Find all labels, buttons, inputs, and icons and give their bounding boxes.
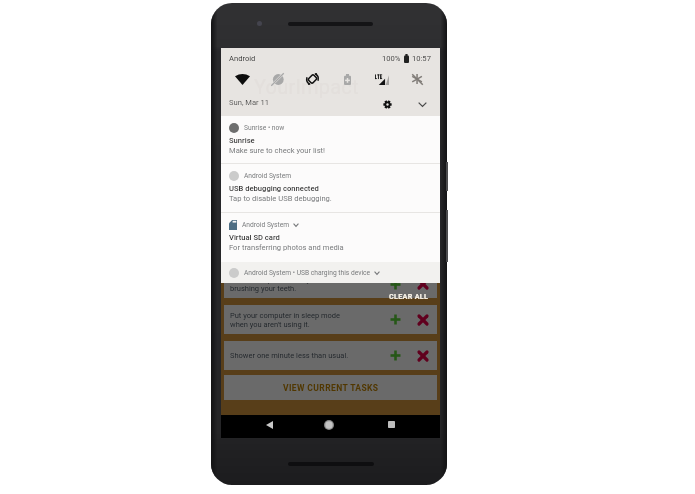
- staticText: 100%: [382, 54, 401, 63]
- staticText: Sun, Mar 11: [229, 98, 270, 107]
- staticText: Virtual SD card: [229, 233, 280, 242]
- button[interactable]: Android System: [221, 213, 440, 262]
- button[interactable]: Add: [382, 270, 408, 298]
- staticText: Android System • USB charging this devic…: [244, 269, 371, 277]
- staticText: Shower one minute less than usual.: [230, 351, 390, 360]
- staticText: Sunrise • now: [244, 124, 285, 132]
- button[interactable]: Flashlight: [404, 66, 430, 92]
- button[interactable]: Expand: [412, 94, 432, 114]
- staticText: 10:57: [412, 54, 431, 63]
- button[interactable]: Put your computer in sleep mode when you…: [224, 305, 437, 334]
- staticText: Make toothpaste last by brushing your te…: [230, 275, 390, 293]
- staticText: Android System: [244, 172, 292, 180]
- staticText: YourImpact: [254, 75, 359, 98]
- staticText: Tap to disable USB debugging.: [229, 194, 332, 203]
- button[interactable]: Do not disturb: [264, 66, 290, 92]
- staticText: Sunrise: [229, 136, 255, 145]
- button[interactable]: Wi-Fi: [229, 66, 255, 92]
- button[interactable]: Auto rotate: [299, 66, 325, 92]
- staticText: USB debugging connected: [229, 184, 319, 193]
- button[interactable]: Android System • USB charging this devic…: [221, 262, 440, 283]
- button[interactable]: Settings: [377, 94, 397, 114]
- button[interactable]: Add: [382, 341, 408, 370]
- button[interactable]: Dismiss: [410, 341, 436, 370]
- staticText: Android: [229, 54, 256, 63]
- staticText: VIEW CURRENT TASKS: [283, 383, 379, 393]
- button[interactable]: Sunrise • now: [221, 116, 440, 163]
- button[interactable]: Make toothpaste last by brushing your te…: [224, 270, 437, 298]
- staticText: Make sure to check your list!: [229, 146, 326, 155]
- staticText: Put your computer in sleep mode when you…: [230, 311, 390, 329]
- button[interactable]: Android System: [221, 164, 440, 212]
- button[interactable]: Mobile data: [369, 66, 395, 92]
- button[interactable]: Home: [314, 413, 344, 436]
- staticText: For transferring photos and media: [229, 243, 344, 252]
- button[interactable]: Recents: [376, 413, 406, 436]
- button[interactable]: Battery saver: [334, 66, 360, 92]
- button[interactable]: Shower one minute less than usual.: [224, 341, 437, 370]
- staticText: CLEAR ALL: [389, 292, 429, 300]
- button[interactable]: VIEW CURRENT TASKS: [224, 375, 437, 400]
- button[interactable]: Dismiss: [410, 305, 436, 334]
- button[interactable]: Dismiss: [410, 270, 436, 298]
- button[interactable]: Back: [254, 413, 284, 436]
- staticText: Android System: [242, 221, 290, 229]
- button[interactable]: Add: [382, 305, 408, 334]
- button[interactable]: CLEAR ALL: [387, 290, 431, 302]
